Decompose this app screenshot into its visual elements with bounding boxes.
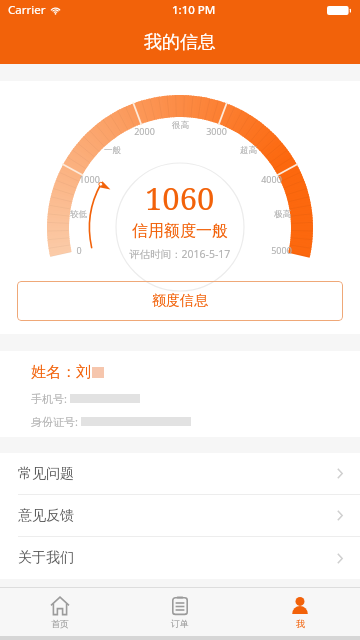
staticText: 4000: [261, 173, 282, 185]
button[interactable]: Profile: [240, 588, 360, 636]
staticText: 意见反馈: [18, 507, 74, 525]
button[interactable]: Home: [0, 588, 120, 636]
staticText: 我的信息: [144, 31, 216, 54]
staticText: 一般: [104, 145, 121, 156]
staticText: 额度信息: [152, 292, 208, 310]
staticText: 5000: [271, 244, 292, 256]
staticText: 1060: [145, 177, 215, 219]
button[interactable]: 常见问题: [0, 453, 360, 495]
staticText: 订单: [171, 618, 189, 629]
staticText: 手机号:: [31, 391, 70, 406]
staticText: 0: [76, 244, 82, 256]
staticText: 3000: [206, 125, 227, 137]
staticText: 关于我们: [18, 549, 74, 567]
staticText: 1000: [79, 173, 100, 185]
button[interactable]: 额度信息: [17, 281, 343, 321]
staticText: 信用额度一般: [132, 221, 228, 241]
staticText: 身份证号:: [31, 414, 81, 429]
staticText: 超高: [240, 145, 257, 156]
staticText: 姓名：刘: [31, 363, 91, 382]
button[interactable]: 关于我们: [0, 537, 360, 579]
staticText: 首页: [51, 618, 69, 629]
button[interactable]: 意见反馈: [0, 495, 360, 537]
staticText: 极高: [274, 209, 291, 220]
staticText: 我: [296, 618, 305, 629]
staticText: 1:10 PM: [172, 2, 216, 18]
staticText: 2000: [134, 125, 155, 137]
staticText: 较低: [70, 209, 87, 220]
staticText: Carrier: [8, 2, 46, 18]
staticText: 常见问题: [18, 465, 74, 483]
staticText: 评估时间：2016-5-17: [129, 247, 231, 261]
staticText: 很高: [172, 120, 189, 131]
button[interactable]: Orders: [120, 588, 240, 636]
